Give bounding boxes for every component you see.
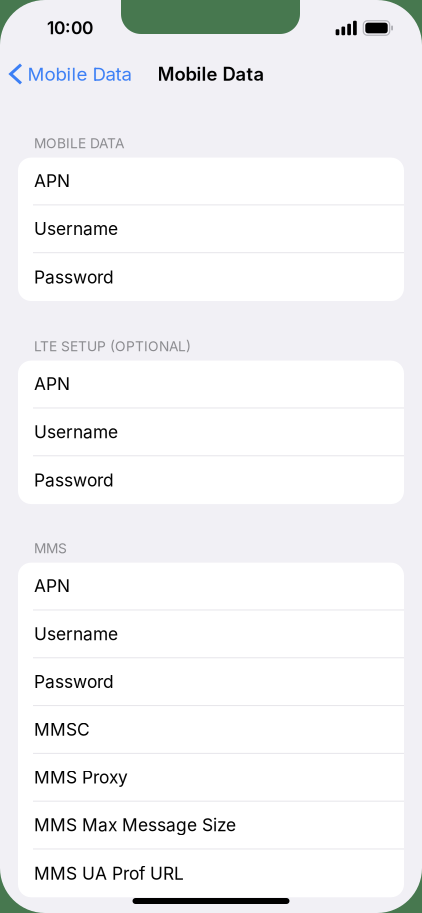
button[interactable]: Password (18, 456, 404, 504)
staticText: Password (34, 470, 114, 491)
staticText: APN (34, 373, 70, 394)
staticText: LTE SETUP (OPTIONAL) (34, 338, 191, 355)
staticText: Mobile Data (157, 63, 264, 85)
staticText: MMS UA Prof URL (34, 863, 184, 884)
staticText: MMSC (34, 719, 90, 740)
button[interactable]: Username (18, 408, 404, 456)
staticText: Mobile Data (28, 63, 132, 85)
staticText: MMS Max Message Size (34, 815, 236, 836)
button[interactable]: APN (18, 361, 404, 408)
button[interactable]: MMS Proxy (18, 754, 404, 802)
staticText: 10:00 (47, 17, 93, 38)
staticText: Username (34, 421, 118, 442)
button[interactable]: APN (18, 158, 404, 205)
button[interactable]: Username (18, 610, 404, 658)
button[interactable]: MMS UA Prof URL (18, 849, 404, 897)
staticText: Username (34, 218, 118, 239)
staticText: APN (34, 576, 70, 597)
staticText: MOBILE DATA (34, 135, 124, 152)
staticText: Password (34, 267, 114, 288)
staticText: Password (34, 671, 114, 692)
button[interactable]: Password (18, 253, 404, 301)
button[interactable]: APN (18, 563, 404, 610)
button[interactable]: Password (18, 658, 404, 706)
button[interactable]: Mobile Data (0, 54, 140, 94)
button[interactable]: MMS Max Message Size (18, 802, 404, 849)
button[interactable]: MMSC (18, 706, 404, 754)
staticText: APN (34, 170, 70, 191)
staticText: MMS Proxy (34, 767, 128, 788)
button[interactable]: Username (18, 205, 404, 253)
staticText: Username (34, 623, 118, 644)
staticText: MMS (34, 540, 67, 557)
